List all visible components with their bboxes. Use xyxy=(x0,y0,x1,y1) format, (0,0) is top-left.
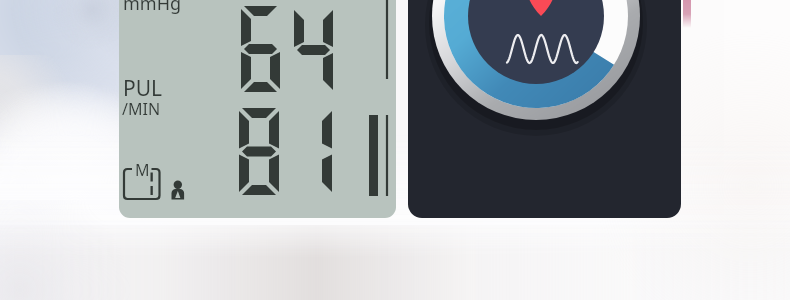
staticText: M xyxy=(135,159,150,181)
button[interactable]: mmHg xyxy=(119,0,396,218)
staticText: PUL xyxy=(123,74,163,103)
staticText: /MIN xyxy=(122,98,161,120)
button[interactable]: Heart rate gauge xyxy=(408,0,681,218)
staticText: mmHg xyxy=(123,0,182,16)
